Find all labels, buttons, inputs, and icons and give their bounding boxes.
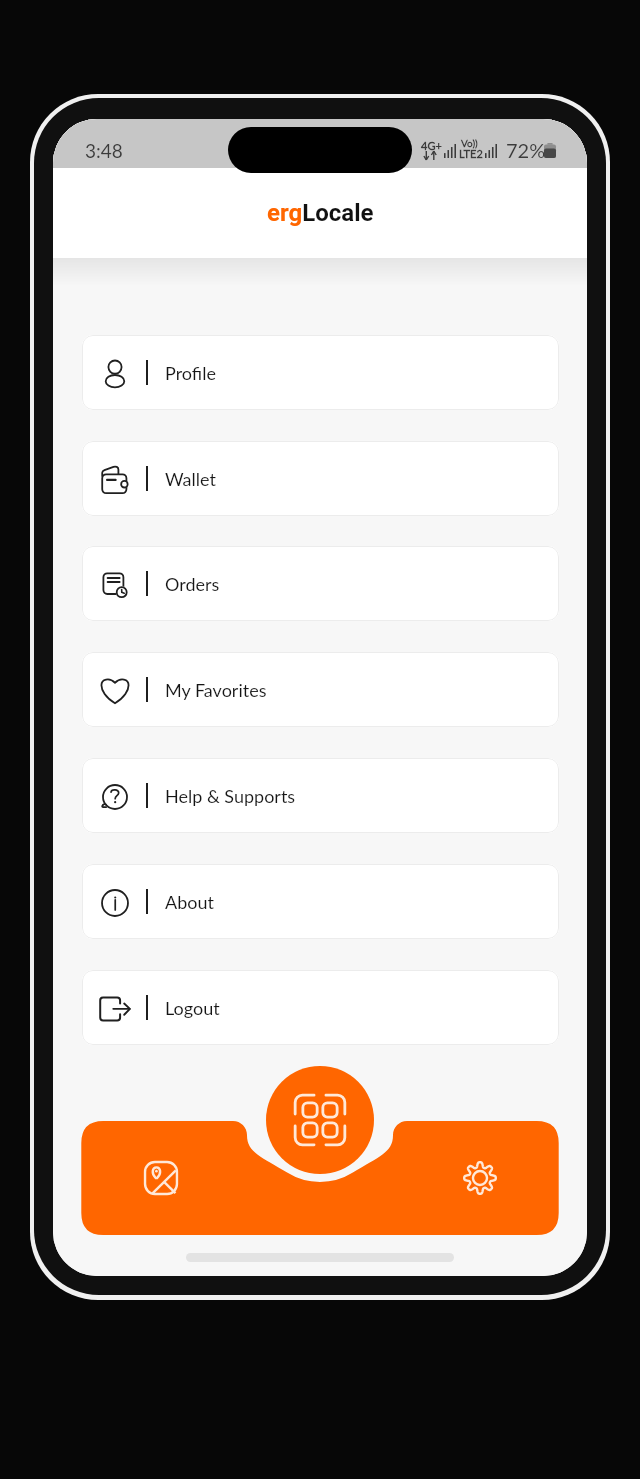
button[interactable]: Orders — [82, 546, 559, 621]
button[interactable]: Map — [81, 1121, 241, 1235]
button[interactable]: Logout — [82, 970, 559, 1045]
staticText: Logout — [165, 997, 220, 1019]
staticText: My Favorites — [165, 679, 267, 701]
staticText: Vo)) — [461, 137, 478, 149]
staticText: LTE2 — [459, 147, 483, 160]
staticText: 3:48 — [85, 139, 123, 162]
staticText: E1 — [401, 147, 412, 158]
staticText: 4G+ — [421, 139, 442, 152]
staticText: ergLocale — [267, 199, 374, 227]
staticText: Wallet — [165, 468, 216, 490]
staticText: Orders — [165, 573, 220, 595]
button[interactable]: Wallet — [82, 441, 559, 516]
button[interactable]: Settings — [400, 1121, 560, 1235]
button[interactable]: Profile — [82, 335, 559, 410]
button[interactable]: Help & Supports — [82, 758, 559, 833]
button[interactable]: My Favorites — [82, 652, 559, 727]
button[interactable]: About — [82, 864, 559, 939]
staticText: Help & Supports — [165, 785, 296, 807]
button[interactable]: Scan QR code — [266, 1066, 374, 1174]
staticText: About — [165, 891, 214, 913]
staticText: 72% — [506, 138, 546, 162]
staticText: Profile — [165, 362, 216, 384]
